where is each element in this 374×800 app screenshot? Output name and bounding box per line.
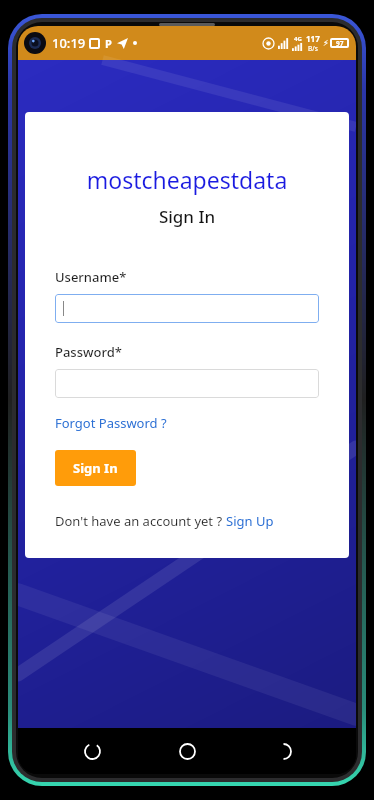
staticText: Forgot Password ? [55, 414, 167, 432]
staticText: 97 [336, 39, 344, 48]
button[interactable]: Forgot Password ? [55, 414, 167, 432]
staticText: Don't have an account yet ? [55, 512, 226, 530]
staticText: 10:19 [52, 34, 86, 52]
staticText: Sign In [73, 459, 118, 477]
staticText: B/s [308, 44, 318, 53]
staticText: Sign Up [226, 512, 274, 530]
staticText: Username* [55, 268, 127, 286]
staticText: 4G [294, 35, 302, 43]
staticText: Password* [55, 343, 122, 361]
button[interactable]: Back [261, 729, 305, 773]
staticText: P [105, 36, 112, 51]
button[interactable]: Recents [70, 729, 114, 773]
staticText: ⚡ [323, 39, 329, 48]
staticText: Sign In [55, 205, 319, 228]
staticText: mostcheapestdata [55, 164, 319, 195]
button[interactable]: Sign In [55, 450, 136, 486]
button[interactable]: Home [165, 729, 209, 773]
button[interactable] [55, 294, 319, 323]
button[interactable] [55, 369, 319, 398]
staticText: 117 [306, 33, 320, 44]
button[interactable]: Sign Up [226, 512, 274, 530]
